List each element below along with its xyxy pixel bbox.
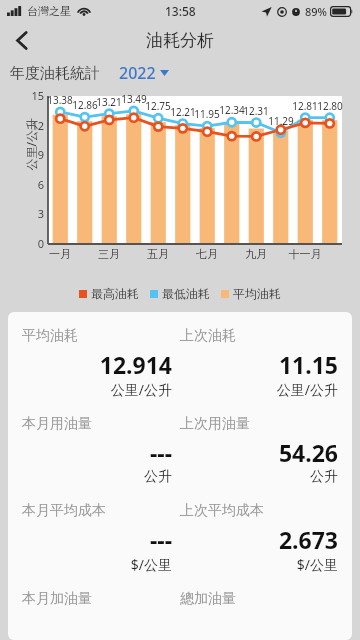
staticText: 油耗分析 [146,30,214,51]
staticText: 公升 [22,468,172,486]
staticText: 台灣之星 [27,4,71,18]
staticText: 12.75 [138,99,178,113]
staticText: 九月 [232,247,280,261]
staticText: $/公里 [180,555,338,574]
staticText: 上次油耗 [180,327,236,345]
staticText: 公里/公升 [180,380,338,399]
staticText: 13.49 [114,92,154,106]
staticText: 9 [21,147,44,162]
staticText: --- [22,437,172,468]
staticText: $/公里 [22,555,172,574]
staticText: 89% [305,4,327,19]
staticText: 0 [21,236,44,251]
staticText: 五月 [134,247,182,261]
staticText: 15 [21,88,44,103]
staticText: 上次用油量 [180,415,250,433]
staticText: 公升 [180,468,338,486]
staticText: 2.673 [180,524,338,555]
staticText: 54.26 [180,437,338,468]
staticText: 上次平均成本 [180,502,264,520]
staticText: 平均油耗 [22,327,78,345]
staticText: 最高油耗 [91,286,139,301]
staticText: 12.81 [285,99,325,113]
staticText: 一月 [36,247,84,261]
staticText: 3 [21,206,44,221]
staticText: 本月用油量 [22,415,92,433]
staticText: 12 [21,118,44,133]
staticText: 公里/公升 [22,117,38,170]
staticText: 13.21 [89,95,129,109]
staticText: 11.15 [180,349,338,380]
staticText: 平均油耗 [233,286,281,301]
staticText: 12.34 [212,103,252,117]
staticText: 12.86 [65,98,105,112]
staticText: --- [22,524,172,555]
staticText: 12.80 [310,99,350,113]
staticText: 11.95 [187,107,227,121]
staticText: 12.21 [163,105,203,119]
staticText: 年度油耗統計 [10,64,100,83]
staticText: 本月加油量 [22,590,180,608]
button[interactable]: 2022 [116,59,172,87]
staticText: 12.914 [22,349,172,380]
staticText: 11.29 [261,114,301,128]
staticText: 十一月 [281,247,329,261]
button[interactable]: Back [3,22,41,58]
staticText: 公里/公升 [22,380,172,399]
staticText: 總加油量 [180,590,338,608]
staticText: 12.31 [236,104,276,118]
staticText: 13.38 [40,93,80,107]
staticText: 七月 [183,247,231,261]
staticText: 本月平均成本 [22,502,106,520]
staticText: 2022 [119,62,156,84]
staticText: 6 [21,177,44,192]
staticText: 13:58 [165,3,196,19]
staticText: 三月 [85,247,133,261]
staticText: 最低油耗 [162,286,210,301]
